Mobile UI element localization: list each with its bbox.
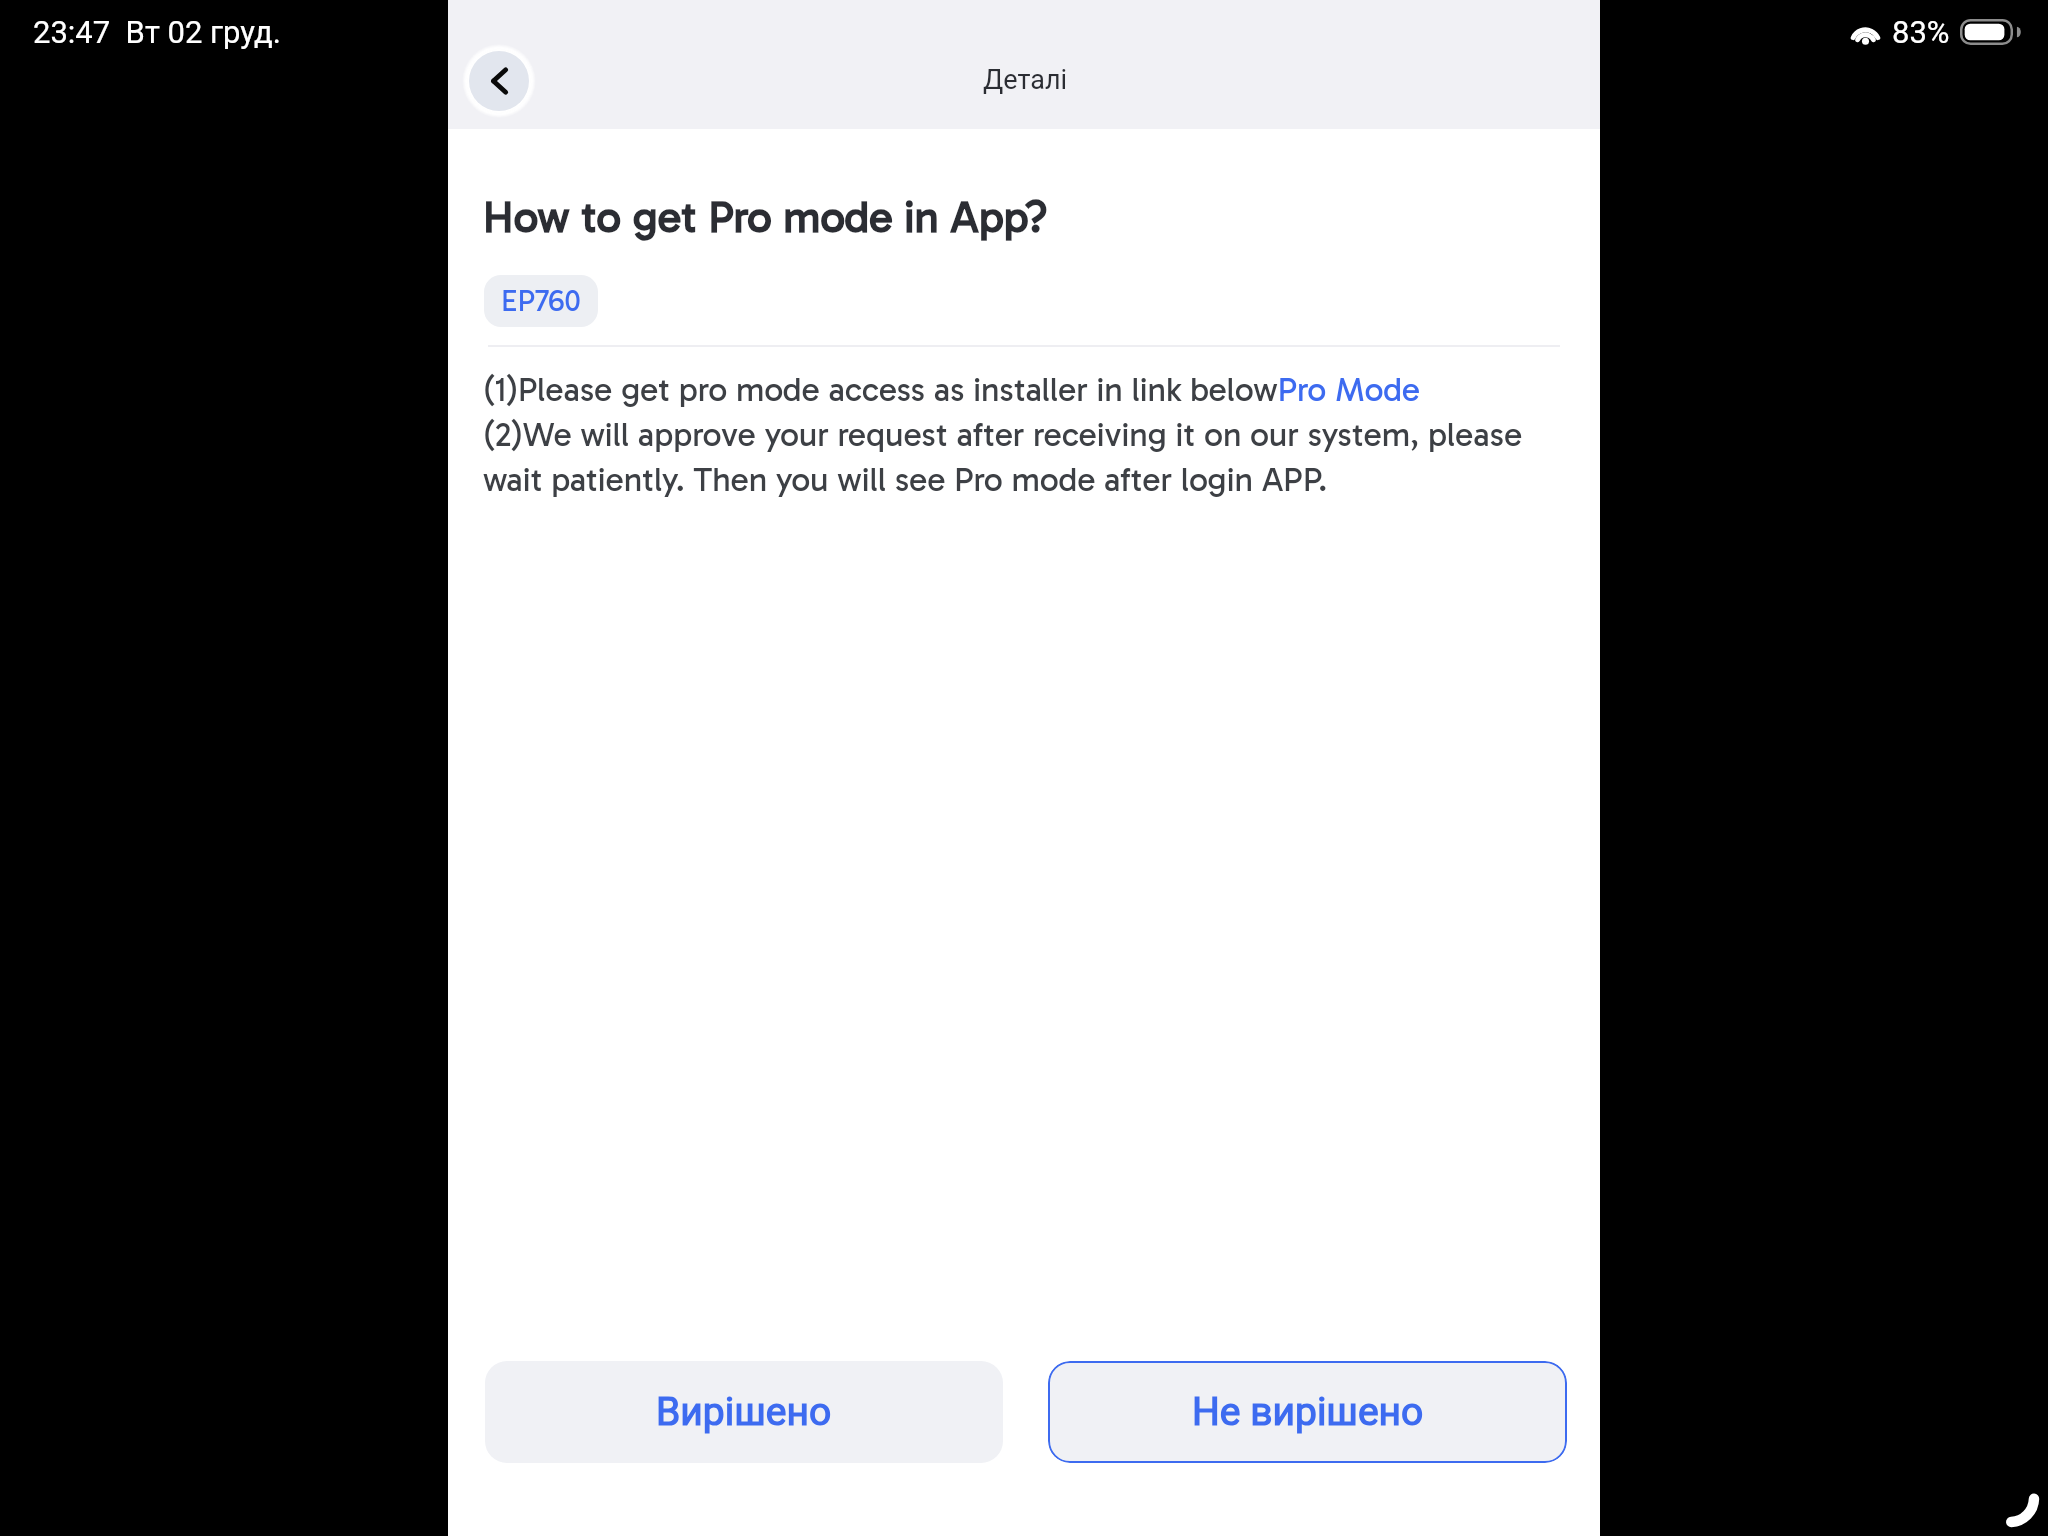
staticText: EP760 — [501, 283, 581, 319]
staticText: How to get Pro mode in App? — [483, 191, 1048, 244]
staticText: 83% — [1892, 14, 1950, 50]
button[interactable]: Вирішено — [485, 1361, 1003, 1463]
button[interactable]: Back — [460, 42, 538, 120]
staticText: 23:47 Вт 02 груд. — [33, 14, 281, 50]
staticText: (1)Please get pro mode access as install… — [483, 370, 1565, 500]
staticText: Не вирішено — [1192, 1389, 1424, 1435]
button[interactable]: Не вирішено — [1048, 1361, 1567, 1463]
staticText: Вирішено — [656, 1389, 832, 1435]
staticText: Деталі — [983, 64, 1068, 96]
